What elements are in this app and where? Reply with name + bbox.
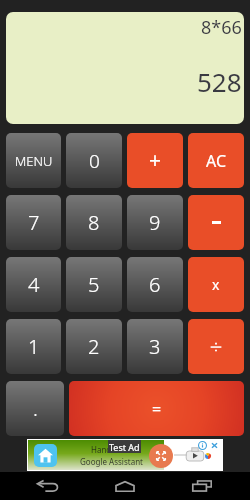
- button[interactable]: Plus: [127, 133, 183, 188]
- staticText: .: [33, 395, 38, 422]
- button[interactable]: MENU: [6, 133, 61, 188]
- button[interactable]: 2: [66, 319, 122, 374]
- button[interactable]: Minus: [188, 195, 244, 250]
- staticText: =: [152, 398, 162, 420]
- button[interactable]: 8: [66, 195, 122, 250]
- button[interactable]: 3: [127, 319, 183, 374]
- other: Close ad: [210, 441, 219, 450]
- staticText: AC: [206, 150, 227, 172]
- staticText: 5: [88, 271, 100, 298]
- staticText: 4: [28, 271, 40, 298]
- button[interactable]: Back: [27, 472, 69, 500]
- button[interactable]: 0: [66, 133, 122, 188]
- button[interactable]: Divide: [188, 319, 244, 374]
- button[interactable]: 9: [127, 195, 183, 250]
- staticText: x: [212, 275, 220, 294]
- button[interactable]: Advertisement: [27, 439, 223, 471]
- staticText: 3: [149, 333, 161, 360]
- other: Ad info: [198, 441, 207, 450]
- staticText: +: [149, 146, 162, 175]
- staticText: 8: [88, 209, 100, 236]
- staticText: Test Ad: [109, 441, 140, 453]
- staticText: 2: [88, 333, 100, 360]
- button[interactable]: 7: [6, 195, 61, 250]
- staticText: Hands-free: [91, 444, 133, 455]
- button[interactable]: Expand ad: [149, 444, 173, 468]
- button[interactable]: Equals: [69, 381, 244, 436]
- button[interactable]: All clear: [188, 133, 244, 188]
- button[interactable]: Multiply: [188, 257, 244, 312]
- staticText: 7: [28, 209, 40, 236]
- button[interactable]: 4: [6, 257, 61, 312]
- staticText: 0: [89, 148, 100, 174]
- button[interactable]: Home: [105, 472, 145, 500]
- button[interactable]: 8*66: [6, 12, 244, 124]
- staticText: MENU: [15, 152, 53, 170]
- button[interactable]: 6: [127, 257, 183, 312]
- button[interactable]: 1: [6, 319, 61, 374]
- button[interactable]: Recent apps: [182, 472, 222, 500]
- staticText: 8*66: [201, 15, 242, 40]
- staticText: 1: [28, 333, 40, 360]
- staticText: 528: [197, 64, 242, 99]
- button[interactable]: .: [6, 381, 64, 436]
- staticText: Google Assistant: [80, 456, 143, 467]
- staticText: 6: [149, 271, 161, 298]
- button[interactable]: 5: [66, 257, 122, 312]
- staticText: 9: [149, 209, 161, 236]
